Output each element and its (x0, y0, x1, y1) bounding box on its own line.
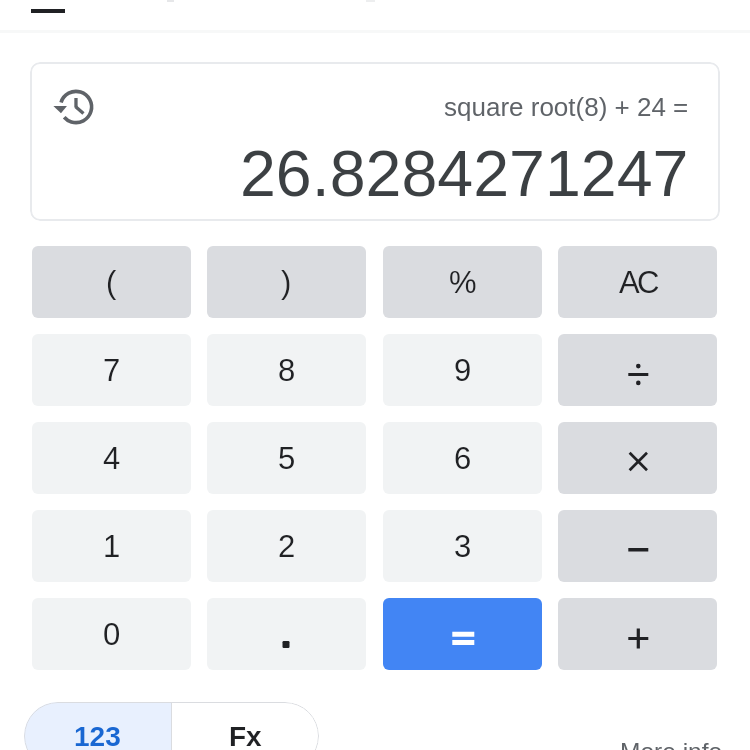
button[interactable]: More info (620, 738, 723, 750)
button[interactable]: ( (32, 246, 191, 318)
staticText: More info (620, 738, 723, 750)
staticText: square root(8) + 24 = (444, 92, 689, 121)
button[interactable]: 1 (32, 510, 191, 582)
button[interactable]: 9 (383, 334, 542, 406)
button[interactable]: equals (383, 598, 542, 670)
staticText: ( (106, 265, 117, 300)
button[interactable]: plus (558, 598, 717, 670)
staticText: 3 (454, 529, 472, 564)
button[interactable]: Fx (171, 702, 319, 750)
staticText: 8 (278, 353, 296, 388)
staticText: 5 (278, 441, 296, 476)
button[interactable]: 2 (207, 510, 366, 582)
button[interactable]: ) (207, 246, 366, 318)
staticText: ) (281, 265, 292, 300)
staticText: 26.8284271247 (240, 138, 689, 210)
staticText: % (449, 265, 477, 300)
button[interactable]: 4 (32, 422, 191, 494)
staticText: 6 (454, 441, 472, 476)
staticText: 1 (103, 529, 121, 564)
button[interactable]: 5 (207, 422, 366, 494)
staticText: 123 (74, 721, 121, 750)
staticText: AC (619, 265, 657, 300)
staticText: 0 (103, 617, 121, 652)
button[interactable]: times (558, 422, 717, 494)
staticText: 2 (278, 529, 296, 564)
button[interactable]: 7 (32, 334, 191, 406)
button[interactable]: . (207, 598, 366, 670)
button[interactable]: 0 (32, 598, 191, 670)
button[interactable]: divide (558, 334, 717, 406)
button[interactable]: AC (558, 246, 717, 318)
staticText: 9 (454, 353, 472, 388)
staticText: 4 (103, 441, 121, 476)
button[interactable]: History (46, 79, 102, 135)
button[interactable]: minus (558, 510, 717, 582)
button[interactable]: 3 (383, 510, 542, 582)
staticText: 7 (103, 353, 121, 388)
button[interactable]: 123 (24, 702, 171, 750)
button[interactable]: % (383, 246, 542, 318)
staticText: Fx (229, 721, 262, 750)
button[interactable]: 8 (207, 334, 366, 406)
button[interactable]: 6 (383, 422, 542, 494)
